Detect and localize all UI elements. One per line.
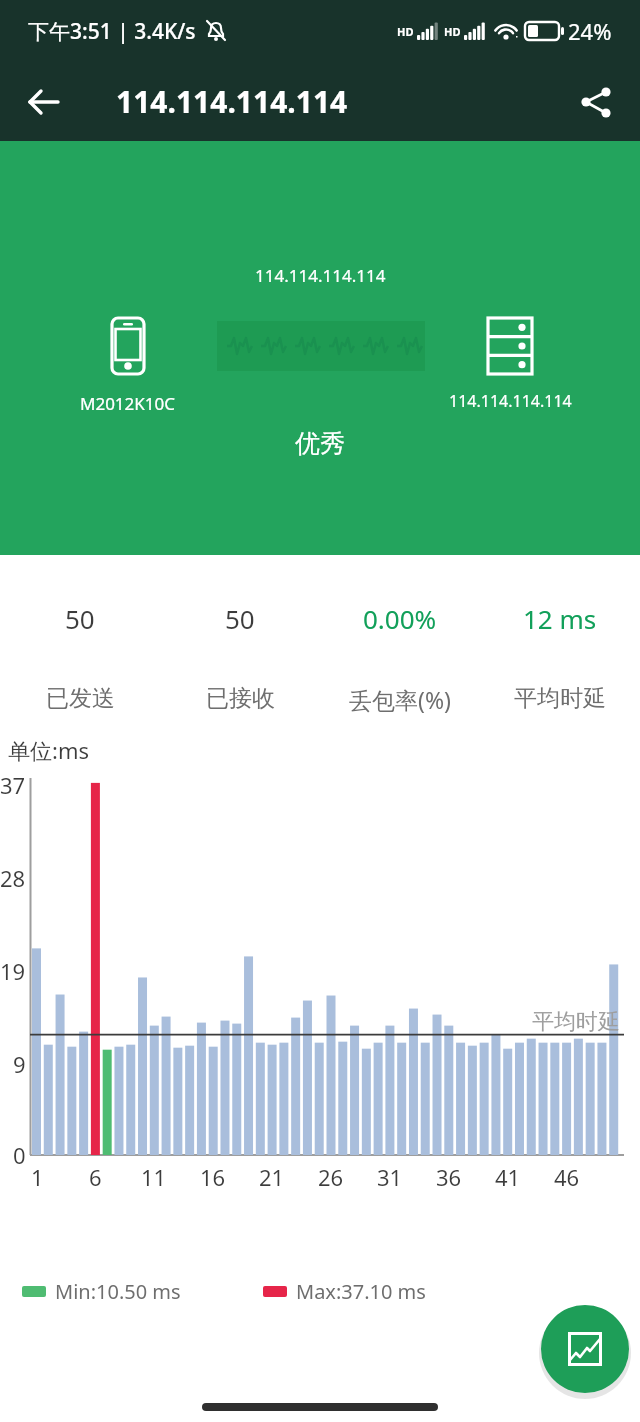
button[interactable] — [12, 70, 76, 134]
staticText: 37 — [0, 770, 26, 800]
staticText: 已发送 — [46, 684, 115, 713]
staticText: 36 — [436, 1162, 462, 1192]
staticText: 41 — [495, 1162, 521, 1192]
staticText: Max:37.10 ms — [296, 1278, 426, 1305]
staticText: 下午3:51 | 3.4K/s — [28, 17, 196, 46]
staticText: 平均时延 — [514, 684, 606, 713]
staticText: 1 — [31, 1162, 44, 1192]
staticText: 50 — [65, 601, 95, 636]
staticText: M2012K10C — [80, 392, 176, 415]
staticText: 46 — [554, 1162, 580, 1192]
staticText: 21 — [259, 1162, 285, 1192]
staticText: 16 — [200, 1162, 226, 1192]
staticText: 单位:ms — [8, 735, 90, 765]
staticText: Min:10.50 ms — [55, 1278, 181, 1305]
staticText: 28 — [0, 863, 26, 893]
staticText: 0 — [13, 1140, 26, 1170]
staticText: 26 — [318, 1162, 344, 1192]
staticText: 31 — [377, 1162, 403, 1192]
staticText: 平均时延 — [532, 1008, 620, 1036]
staticText: 11 — [141, 1162, 167, 1192]
staticText: 12 ms — [523, 601, 597, 636]
staticText: 50 — [225, 601, 255, 636]
staticText: 0.00% — [363, 601, 437, 636]
button[interactable] — [541, 1305, 629, 1393]
staticText: HD — [444, 24, 461, 39]
staticText: 优秀 — [295, 428, 345, 459]
button[interactable] — [564, 70, 628, 134]
staticText: 9 — [13, 1049, 26, 1079]
staticText: 24% — [568, 16, 612, 46]
staticText: HD — [397, 24, 414, 39]
staticText: 114.114.114.114 — [116, 81, 348, 122]
staticText: 19 — [0, 956, 26, 986]
staticText: 6 — [89, 1162, 102, 1192]
staticText: 114.114.114.114 — [255, 264, 386, 287]
staticText: 丢包率(%) — [349, 684, 451, 715]
staticText: 已接收 — [206, 684, 275, 713]
staticText: 114.114.114.114 — [449, 390, 572, 412]
